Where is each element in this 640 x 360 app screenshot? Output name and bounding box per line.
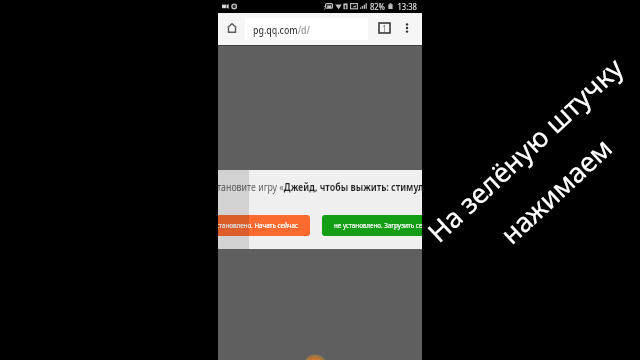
staticText: тановите игру «Джейд, чтобы выжить: стим… [218,179,422,194]
staticText: 13:38 [397,0,417,13]
staticText: не установлено. Загрузить сейчас [334,220,422,231]
button[interactable]: More options [398,18,415,38]
staticText: 1 [382,23,386,34]
button[interactable]: установлено. Начать сейчас [218,215,310,236]
staticText: 82% [370,0,385,13]
button[interactable]: Home [222,18,242,38]
staticText: установлено. Начать сейчас [218,220,299,231]
button[interactable]: Tabs [374,18,394,38]
button[interactable]: pg.qq.com/d/ [245,18,368,40]
staticText: pg.qq.com/d/ [253,22,311,37]
staticText: нажимаем [492,129,620,252]
button[interactable]: не установлено. Загрузить сейчас [322,215,422,236]
staticText: На зелёную штучку [419,49,631,250]
